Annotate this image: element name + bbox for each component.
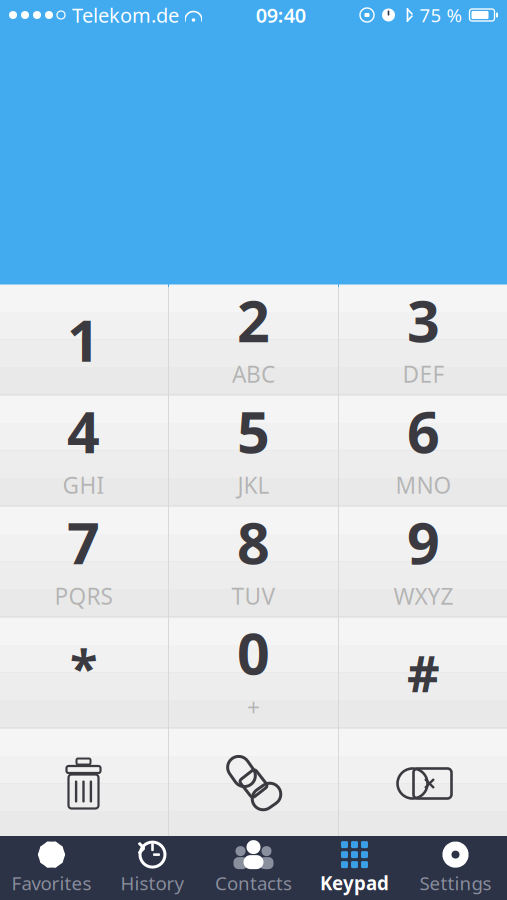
button[interactable]: 9 — [339, 506, 507, 616]
staticText: # — [407, 639, 440, 706]
staticText: ABC — [232, 359, 275, 389]
button[interactable]: 3 — [339, 284, 507, 394]
staticText: Favorites — [11, 871, 91, 895]
button[interactable]: Contacts — [203, 836, 304, 900]
button[interactable]: Call — [169, 728, 338, 838]
button[interactable]: 6 — [339, 395, 507, 505]
button[interactable]: Keypad — [304, 836, 405, 900]
staticText: 6 — [407, 393, 440, 469]
staticText: 3 — [407, 282, 440, 358]
staticText: 0 — [237, 614, 270, 690]
staticText: History — [120, 871, 184, 895]
button[interactable]: 0 — [169, 617, 338, 727]
staticText: Settings — [419, 871, 491, 895]
staticText: 9 — [407, 504, 440, 580]
staticText: WXYZ — [393, 581, 453, 611]
staticText: 1 — [67, 301, 100, 377]
staticText: 2 — [237, 282, 270, 358]
button[interactable]: * — [0, 617, 168, 727]
staticText: 5 — [237, 393, 270, 469]
button[interactable]: # — [339, 617, 507, 727]
button[interactable]: Favorites — [1, 836, 102, 900]
staticText: 09:40 — [256, 2, 306, 28]
staticText: PQRS — [54, 581, 112, 611]
button[interactable]: 2 — [169, 284, 338, 394]
button[interactable]: 8 — [169, 506, 338, 616]
button[interactable]: History — [102, 836, 203, 900]
staticText: * — [70, 633, 97, 700]
staticText: 7 — [67, 504, 100, 580]
staticText: GHI — [62, 470, 104, 500]
button[interactable]: 5 — [169, 395, 338, 505]
staticText: MNO — [395, 470, 451, 500]
staticText: 8 — [237, 504, 270, 580]
staticText: 75 % — [419, 3, 462, 27]
staticText: JKL — [237, 470, 269, 500]
button[interactable]: Settings — [405, 836, 506, 900]
staticText: Keypad — [320, 871, 389, 895]
staticText: + — [247, 692, 260, 723]
staticText: Contacts — [215, 871, 292, 895]
staticText: Telekom.de — [72, 2, 179, 28]
staticText: DEF — [402, 359, 444, 389]
staticText: TUV — [231, 581, 275, 611]
button[interactable]: Delete — [339, 728, 507, 838]
button[interactable]: 7 — [0, 506, 168, 616]
button[interactable]: Clear — [0, 728, 168, 838]
button[interactable]: 1 — [0, 284, 168, 394]
staticText: 4 — [67, 393, 100, 469]
button[interactable]: 4 — [0, 395, 168, 505]
